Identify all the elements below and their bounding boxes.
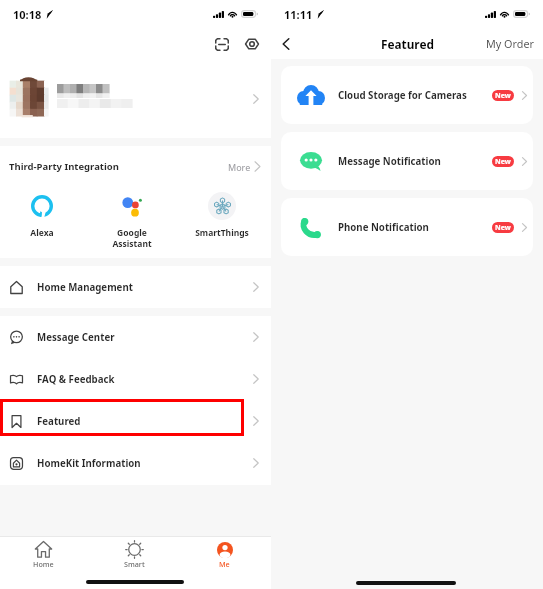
staticText: 11:11 [284, 7, 313, 22]
button[interactable] [0, 72, 271, 126]
staticText: FAQ & Feedback [37, 373, 115, 386]
staticText: 10:18 [13, 7, 42, 22]
staticText: Home Management [37, 281, 133, 294]
staticText: New [495, 91, 511, 101]
staticText: New [495, 223, 511, 233]
staticText: Phone Notification [338, 221, 429, 234]
button[interactable]: FAQ & Feedback [0, 358, 271, 400]
staticText: Smart [124, 559, 145, 569]
button[interactable]: Alexa [0, 191, 87, 239]
staticText: New [495, 157, 511, 167]
staticText: Message Center [37, 331, 115, 344]
button[interactable]: Message Notification [281, 132, 533, 190]
button[interactable]: Phone Notification [281, 198, 533, 256]
staticText: Alexa [30, 227, 54, 239]
button[interactable]: Cloud Storage for Cameras [281, 66, 533, 124]
staticText: Google Assistant [112, 227, 152, 249]
staticText: Home [33, 559, 54, 569]
button[interactable]: SmartThings [177, 191, 267, 239]
button[interactable]: Scan QR code [209, 31, 235, 57]
button[interactable]: HomeKit Information [0, 442, 271, 484]
button[interactable]: Google Assistant [87, 191, 177, 249]
button[interactable]: My Order [486, 36, 534, 51]
staticText: Message Notification [338, 155, 441, 168]
staticText: Cloud Storage for Cameras [338, 89, 467, 102]
button[interactable]: Settings [239, 31, 265, 57]
staticText: Third-Party Integration [9, 160, 119, 173]
button[interactable]: Third-Party Integration [0, 146, 271, 187]
button[interactable]: Back [273, 31, 299, 57]
staticText: Me [219, 559, 230, 569]
button[interactable]: Message Center [0, 316, 271, 358]
button[interactable]: Smart [89, 537, 179, 571]
button[interactable]: Home [0, 537, 89, 571]
staticText: More [228, 161, 251, 173]
staticText: Featured [381, 36, 434, 52]
staticText: Featured [37, 415, 81, 428]
button[interactable]: Featured [0, 400, 271, 442]
button[interactable]: Home Management [0, 266, 271, 308]
button[interactable]: Me [179, 537, 269, 571]
staticText: SmartThings [195, 227, 249, 239]
staticText: HomeKit Information [37, 457, 141, 470]
